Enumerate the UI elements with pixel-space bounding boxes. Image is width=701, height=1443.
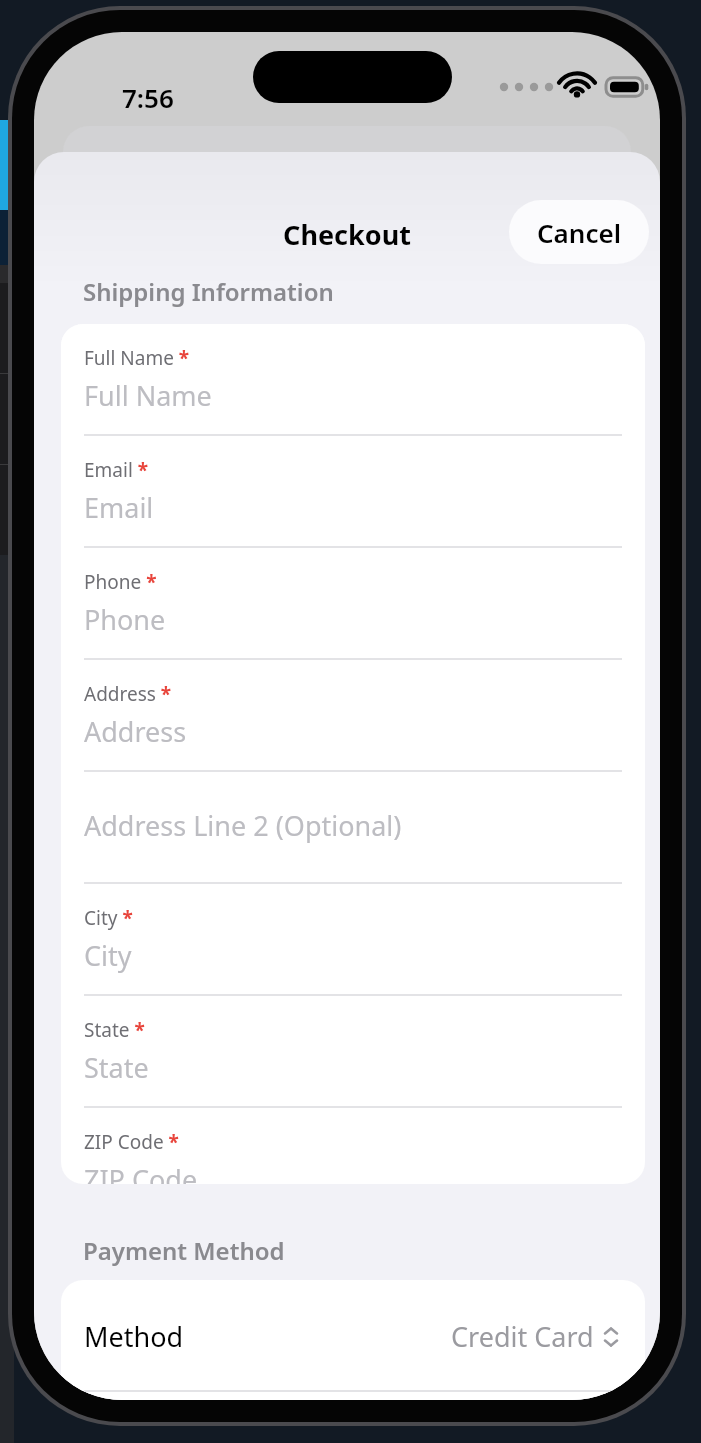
button[interactable]: Phone * bbox=[61, 548, 645, 660]
button[interactable]: State * bbox=[61, 996, 645, 1108]
staticText: 7:56 bbox=[122, 80, 174, 115]
staticText: Email * bbox=[84, 457, 149, 483]
button[interactable]: Email * bbox=[61, 436, 645, 548]
button[interactable]: City * bbox=[61, 884, 645, 996]
staticText: Method bbox=[84, 1318, 184, 1355]
staticText: ZIP Code bbox=[84, 1161, 198, 1184]
staticText: Cancel bbox=[537, 215, 622, 250]
staticText: ZIP Code * bbox=[84, 1129, 179, 1155]
staticText: Phone bbox=[84, 601, 166, 638]
staticText: Address Line 2 (Optional) bbox=[84, 807, 402, 844]
staticText: Credit Card bbox=[451, 1318, 594, 1355]
staticText: Checkout bbox=[34, 216, 660, 253]
staticText: Address * bbox=[84, 681, 172, 707]
staticText: Address bbox=[84, 713, 187, 750]
staticText: Payment Method bbox=[83, 1234, 285, 1267]
staticText: Shipping Information bbox=[83, 275, 334, 308]
staticText: State bbox=[84, 1049, 149, 1086]
button[interactable]: Full Name * bbox=[61, 324, 645, 436]
button[interactable]: Cardholder Name * bbox=[61, 1392, 645, 1400]
staticText: State * bbox=[84, 1017, 145, 1043]
button[interactable]: Method bbox=[61, 1280, 645, 1392]
staticText: Email bbox=[84, 489, 154, 526]
staticText: Full Name bbox=[84, 377, 212, 414]
staticText: City bbox=[84, 937, 132, 974]
button[interactable]: Address Line 2 (Optional) bbox=[61, 772, 645, 884]
staticText: Full Name * bbox=[84, 345, 190, 371]
button[interactable]: ZIP Code * bbox=[61, 1108, 645, 1184]
staticText: Phone * bbox=[84, 569, 157, 595]
button[interactable]: Cancel bbox=[509, 200, 649, 264]
staticText: City * bbox=[84, 905, 133, 931]
button[interactable]: Address * bbox=[61, 660, 645, 772]
